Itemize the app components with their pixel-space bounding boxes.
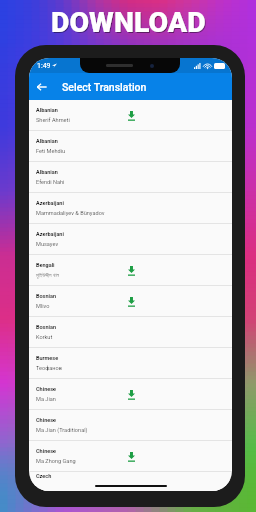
button[interactable]: Download [123, 387, 139, 403]
staticText: Ma Zhong Gang [36, 458, 76, 465]
staticText: Select Translation [62, 81, 147, 93]
staticText: Bosnian [36, 293, 57, 299]
button[interactable]: Albanian [29, 100, 232, 131]
staticText: Теофанов [36, 365, 62, 372]
button[interactable]: Bengali [29, 255, 232, 286]
button[interactable]: Chinese [29, 379, 232, 410]
staticText: DOWNLOAD [51, 6, 206, 39]
staticText: Ma Jian [36, 396, 56, 403]
staticText: 1:49 [37, 62, 51, 70]
button[interactable]: Download [123, 263, 139, 279]
staticText: Chinese [36, 448, 56, 454]
button[interactable]: Download [123, 108, 139, 124]
button[interactable]: Albanian [29, 162, 232, 193]
button[interactable]: Chinese [29, 410, 232, 441]
staticText: Chinese [36, 417, 56, 423]
staticText: Chinese [36, 386, 56, 392]
staticText: Bengali [36, 262, 55, 268]
button[interactable]: Burmese [29, 348, 232, 379]
staticText: Efendi Nahi [36, 179, 65, 186]
staticText: DOWNLOAD [52, 7, 207, 40]
button[interactable]: Czech [29, 472, 232, 491]
staticText: Korkut [36, 334, 53, 341]
staticText: Hrbek [36, 483, 51, 490]
staticText: Burmese [36, 355, 59, 361]
staticText: Feti Mehdiu [36, 148, 66, 155]
staticText: Ma Jian (Traditional) [36, 427, 88, 434]
button[interactable]: Azerbaijani [29, 193, 232, 224]
button[interactable]: Download [123, 294, 139, 310]
staticText: Mlivo [36, 303, 50, 310]
staticText: Albanian [36, 169, 58, 175]
staticText: Azerbaijani [36, 231, 64, 237]
staticText: Albanian [36, 138, 58, 144]
button[interactable]: Back [32, 78, 50, 96]
button[interactable]: Download [123, 449, 139, 465]
button[interactable]: Bosnian [29, 317, 232, 348]
staticText: Bosnian [36, 324, 57, 330]
button[interactable]: Chinese [29, 441, 232, 472]
button[interactable]: Albanian [29, 131, 232, 162]
staticText: Mammadaliyev & Bünyadov [36, 210, 105, 217]
staticText: মুহিউদ্দীন খান [36, 272, 59, 279]
staticText: Azerbaijani [36, 200, 64, 206]
staticText: Musayev [36, 241, 59, 248]
staticText: Sherif Ahmeti [36, 117, 70, 124]
staticText: Albanian [36, 107, 58, 113]
staticText: Czech [36, 473, 52, 479]
button[interactable]: Bosnian [29, 286, 232, 317]
button[interactable]: Azerbaijani [29, 224, 232, 255]
